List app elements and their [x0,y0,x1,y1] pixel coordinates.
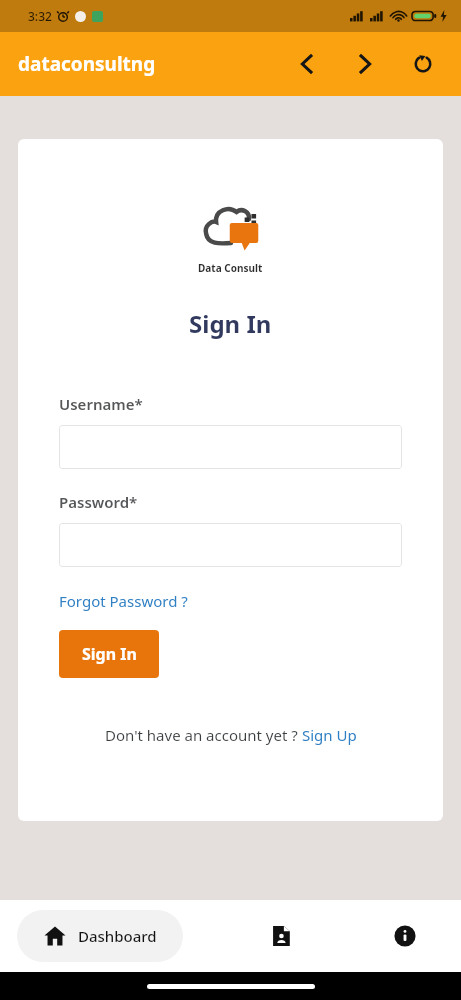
staticText: 3:32 [28,8,52,24]
staticText: dataconsultng [18,51,156,77]
button[interactable]: Back [285,42,329,86]
staticText: Password* [59,492,138,512]
staticText: Dashboard [78,926,157,946]
staticText: Don't have an account yet ? [105,725,302,745]
button[interactable]: Profile [255,910,307,962]
button[interactable]: Dashboard [17,910,183,962]
staticText: Sign In [82,643,137,665]
button[interactable]: Forgot Password ? [59,591,188,611]
staticText: Sign In [189,307,272,340]
staticText: Sign Up [302,725,357,745]
button[interactable]: Refresh [401,42,445,86]
button[interactable]: Sign Up [302,725,357,745]
button[interactable] [59,425,402,469]
button[interactable]: Forward [343,42,387,86]
button[interactable]: Sign In [59,630,159,678]
button[interactable] [59,523,402,567]
staticText: Username* [59,394,143,414]
button[interactable]: Info [379,910,431,962]
staticText: Forgot Password ? [59,591,188,611]
staticText: Data Consult [198,261,263,275]
